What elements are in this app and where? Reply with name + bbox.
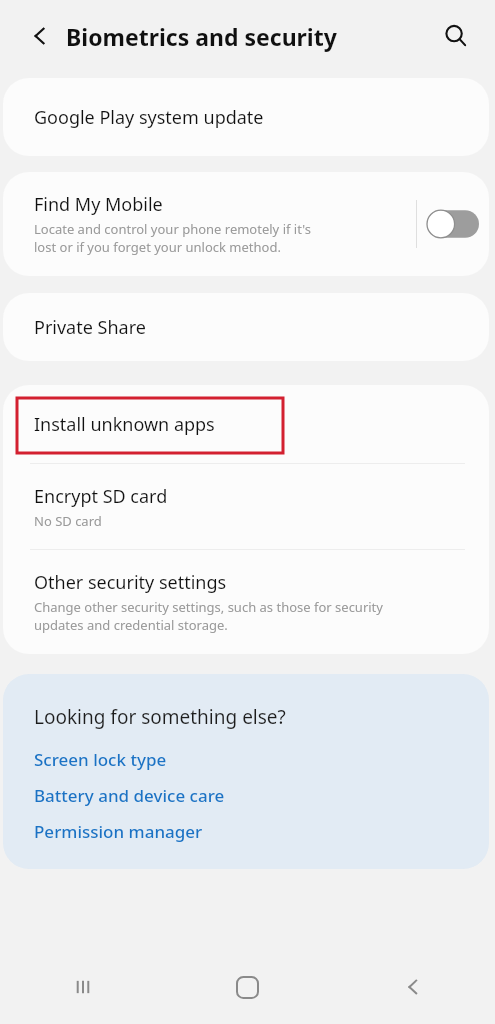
staticText: Other security settings bbox=[34, 570, 227, 595]
staticText: Screen lock type bbox=[34, 748, 167, 771]
staticText: Find My Mobile bbox=[34, 192, 163, 217]
button[interactable]: Back bbox=[330, 950, 495, 1024]
button[interactable]: Private Share bbox=[3, 293, 489, 361]
staticText: Locate and control your phone remotely i… bbox=[34, 220, 311, 256]
staticText: No SD card bbox=[34, 512, 102, 530]
staticText: Install unknown apps bbox=[34, 412, 215, 437]
staticText: Looking for something else? bbox=[34, 704, 286, 730]
button[interactable]: Battery and device care bbox=[34, 784, 225, 807]
button[interactable]: Back bbox=[20, 16, 60, 56]
button[interactable]: Recent apps bbox=[0, 950, 165, 1024]
staticText: Change other security settings, such as … bbox=[34, 598, 383, 634]
button[interactable]: Find My Mobile toggle bbox=[417, 172, 489, 276]
button[interactable]: Install unknown apps bbox=[3, 385, 489, 463]
button[interactable]: Other security settings bbox=[3, 550, 489, 654]
staticText: Battery and device care bbox=[34, 784, 225, 807]
button[interactable]: Encrypt SD card bbox=[3, 464, 489, 549]
staticText: Biometrics and security bbox=[66, 21, 337, 52]
button[interactable]: Google Play system update bbox=[3, 78, 489, 156]
button[interactable]: Find My Mobile bbox=[3, 172, 416, 276]
button[interactable]: Permission manager bbox=[34, 820, 203, 843]
staticText: Permission manager bbox=[34, 820, 203, 843]
button[interactable]: Search bbox=[435, 15, 477, 57]
button[interactable]: Home bbox=[165, 950, 330, 1024]
staticText: Private Share bbox=[34, 315, 146, 340]
button[interactable]: Screen lock type bbox=[34, 748, 167, 771]
staticText: Encrypt SD card bbox=[34, 484, 168, 509]
staticText: Google Play system update bbox=[34, 105, 264, 130]
